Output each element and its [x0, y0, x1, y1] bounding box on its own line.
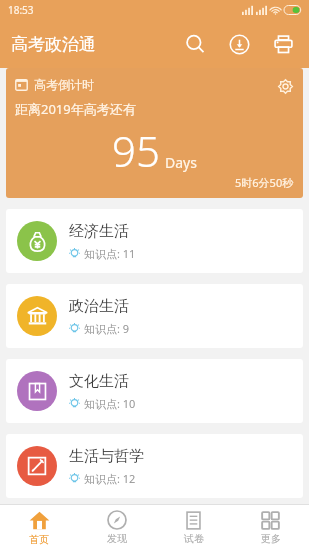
button[interactable]: 高考倒计时: [6, 68, 303, 198]
button[interactable]: 发现: [78, 505, 155, 550]
staticText: Days: [165, 153, 197, 172]
staticText: 经济生活: [69, 222, 129, 241]
staticText: 更多: [261, 532, 281, 545]
staticText: 生活与哲学: [69, 447, 144, 466]
button[interactable]: 生活与哲学: [6, 434, 303, 498]
staticText: 95: [112, 122, 160, 179]
button[interactable]: 试卷: [155, 505, 232, 550]
staticText: 高考倒计时: [34, 77, 94, 92]
staticText: 试卷: [184, 532, 204, 545]
button[interactable]: 文化生活: [6, 359, 303, 423]
staticText: 5时6分50秒: [235, 175, 294, 190]
staticText: 文化生活: [69, 372, 129, 391]
button[interactable]: Settings: [272, 73, 298, 99]
button[interactable]: 首页: [0, 505, 78, 550]
staticText: 发现: [107, 532, 127, 545]
staticText: 高考政治通: [11, 34, 96, 55]
staticText: 首页: [29, 533, 49, 546]
staticText: 政治生活: [69, 297, 129, 316]
button[interactable]: Search: [173, 22, 217, 66]
staticText: 距离2019年高考还有: [15, 100, 136, 118]
staticText: 知识点: 11: [84, 246, 136, 261]
button[interactable]: 更多: [232, 505, 309, 550]
staticText: 知识点: 12: [84, 471, 136, 486]
staticText: 18:53: [8, 3, 34, 17]
staticText: 知识点: 10: [84, 396, 136, 411]
button[interactable]: 政治生活: [6, 284, 303, 348]
button[interactable]: 经济生活: [6, 209, 303, 273]
button[interactable]: Download: [217, 22, 261, 66]
button[interactable]: Print: [261, 22, 305, 66]
staticText: 知识点: 9: [84, 321, 130, 336]
